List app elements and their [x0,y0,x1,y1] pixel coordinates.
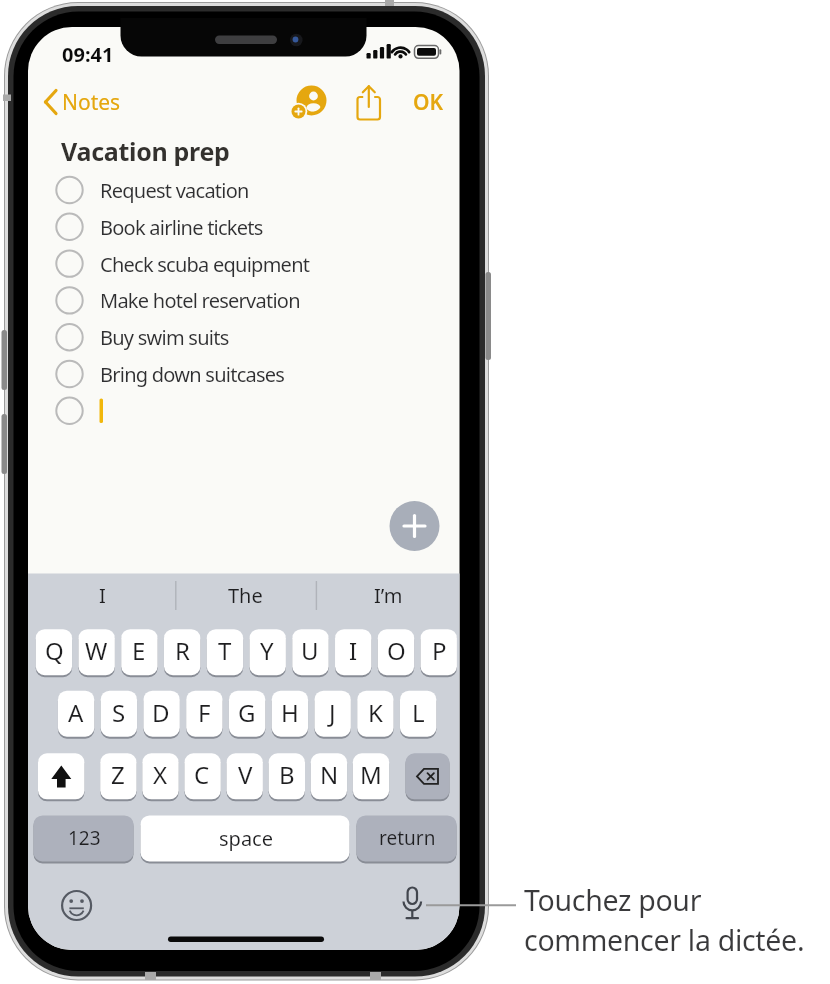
button[interactable]: Buy swim suits [100,321,420,353]
button[interactable]: 123 [34,815,134,861]
staticText: 09:41 [62,41,114,68]
staticText: B [279,758,295,791]
button[interactable]: O [378,627,414,673]
staticText: Notes [62,88,121,117]
staticText: U [301,634,319,667]
button[interactable]: Notes [62,86,138,118]
staticText: Vacation prep [61,134,230,166]
button[interactable]: space [141,815,350,861]
staticText: V [238,758,253,791]
staticText: Request vacation [100,177,249,204]
button[interactable]: V [227,751,263,797]
button[interactable]: Make hotel reservation [100,284,420,316]
staticText: Y [260,634,274,667]
button[interactable]: E [121,627,157,673]
staticText: Bring down suitcases [100,361,285,388]
staticText: I [349,634,358,667]
staticText: W [85,634,108,667]
staticText: N [320,758,339,791]
button[interactable]: W [78,627,114,673]
staticText: R [175,634,190,667]
button[interactable]: I [52,580,152,611]
staticText: T [218,634,232,667]
button[interactable]: return [357,815,457,861]
staticText: D [152,696,170,729]
staticText: M [360,758,382,791]
button[interactable]: B [269,751,305,797]
button[interactable] [352,84,385,122]
staticText: X [153,758,168,791]
button[interactable] [406,753,450,799]
staticText: F [198,696,211,729]
button[interactable]: C [184,751,220,797]
button[interactable]: D [143,689,179,735]
button[interactable] [293,87,325,119]
button[interactable]: X [142,751,178,797]
staticText: J [329,696,336,729]
button[interactable]: I [335,627,371,673]
staticText: C [194,758,210,791]
staticText: Buy swim suits [100,324,229,351]
button[interactable]: M [353,751,389,797]
button[interactable]: F [186,689,222,735]
staticText: E [132,634,146,667]
staticText: I’m [374,582,403,609]
button[interactable]: The [195,580,295,611]
staticText: P [432,634,447,667]
staticText: 123 [68,825,101,851]
staticText: Book airline tickets [100,214,263,241]
staticText: The [228,582,263,609]
staticText: L [412,696,425,729]
button[interactable] [38,753,85,799]
button[interactable] [60,889,93,922]
button[interactable] [40,86,60,118]
button[interactable]: G [229,689,265,735]
button[interactable]: Y [249,627,285,673]
staticText: S [112,696,126,729]
button[interactable]: K [357,689,393,735]
button[interactable]: OK [406,86,450,118]
staticText: G [238,696,256,729]
staticText: A [68,696,84,729]
button[interactable]: R [164,627,200,673]
button[interactable]: Q [36,627,72,673]
staticText: Z [111,758,125,791]
button[interactable] [396,886,429,922]
staticText: Make hotel reservation [100,287,300,314]
staticText: K [368,696,383,729]
button[interactable]: Book airline tickets [100,211,420,243]
staticText: I [99,582,106,609]
button[interactable]: P [421,627,457,673]
button[interactable]: J [314,689,350,735]
staticText: return [379,825,436,851]
button[interactable]: Request vacation [100,174,420,206]
button[interactable]: U [292,627,328,673]
staticText: Q [45,634,64,667]
staticText: Check scuba equipment [100,251,310,278]
button[interactable]: S [101,689,137,735]
button[interactable]: H [272,689,308,735]
button[interactable]: L [400,689,436,735]
button[interactable]: N [311,751,347,797]
button[interactable]: Bring down suitcases [100,358,420,390]
staticText: O [387,634,406,667]
staticText: space [219,825,273,852]
staticText: H [281,696,299,729]
button[interactable]: Z [100,751,136,797]
button[interactable]: I’m [338,580,438,611]
staticText: OK [413,88,444,117]
button[interactable]: A [58,689,94,735]
button[interactable] [389,500,440,551]
button[interactable]: Check scuba equipment [100,248,420,280]
button[interactable]: T [207,627,243,673]
staticText: Touchez pour commencer la dictée. [524,881,805,959]
